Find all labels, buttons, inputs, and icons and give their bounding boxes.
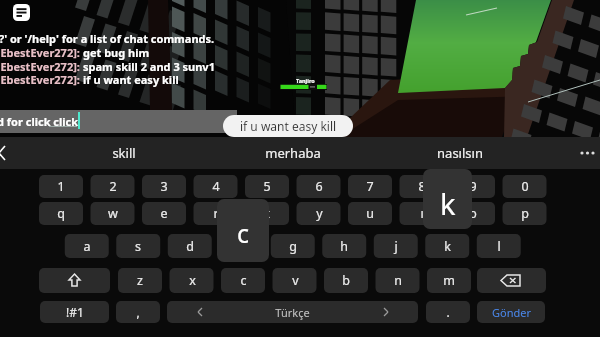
staticText: v <box>292 272 299 289</box>
button[interactable]: c <box>221 268 265 293</box>
staticText: merhaba <box>265 144 321 162</box>
button[interactable]: nasılsın <box>400 137 520 169</box>
staticText: m <box>443 272 455 289</box>
button[interactable]: 2 <box>91 175 135 198</box>
staticText: if u want easy kill <box>83 72 179 87</box>
staticText: Gönder <box>492 305 531 320</box>
staticText: if u want easy kill <box>240 118 337 134</box>
staticText: w <box>108 205 118 222</box>
button[interactable]: w <box>91 202 135 225</box>
button[interactable]: x <box>170 268 214 293</box>
staticText: ı <box>420 205 424 222</box>
button[interactable]: Türkçe <box>167 301 418 323</box>
staticText: spam skill 2 and 3 sunv1 <box>83 59 215 74</box>
button[interactable]: 5 <box>245 175 289 198</box>
staticText: q <box>57 205 65 222</box>
button[interactable]: g <box>271 234 315 258</box>
button[interactable]: 8 <box>400 175 444 198</box>
staticText: . <box>446 304 450 320</box>
staticText: c <box>240 272 247 289</box>
staticText: k <box>440 184 456 223</box>
button[interactable]: m <box>427 268 471 293</box>
button[interactable]: k <box>423 169 472 229</box>
button[interactable]: s <box>116 234 160 258</box>
staticText: b <box>342 272 350 289</box>
staticText: 3 <box>160 178 168 195</box>
button[interactable]: 7 <box>348 175 392 198</box>
button[interactable]: !#1 <box>40 301 109 323</box>
staticText: 7 <box>366 178 374 195</box>
button[interactable]: q <box>39 202 83 225</box>
button[interactable]: , <box>116 301 160 323</box>
staticText: d <box>186 238 194 255</box>
button[interactable]: l <box>477 234 521 258</box>
staticText: 0 <box>521 178 529 195</box>
staticText: a <box>83 238 91 255</box>
button[interactable]: skill <box>64 137 184 169</box>
staticText: skill <box>112 144 136 162</box>
staticText: Türkçe <box>275 305 310 320</box>
button[interactable]: r <box>194 202 238 225</box>
button[interactable]: u <box>348 202 392 225</box>
button[interactable]: Shift <box>39 268 110 293</box>
staticText: r <box>213 205 219 222</box>
button[interactable]: d <box>168 234 212 258</box>
button[interactable]: Gönder <box>477 301 545 323</box>
button[interactable]: 3 <box>142 175 186 198</box>
button[interactable]: 1 <box>39 175 83 198</box>
button[interactable]: t <box>245 202 289 225</box>
button[interactable]: 4 <box>194 175 238 198</box>
staticText: u <box>366 205 374 222</box>
staticText: 4 <box>212 178 220 195</box>
staticText: y <box>316 205 323 222</box>
staticText: x <box>189 272 196 289</box>
staticText: n <box>394 272 402 289</box>
button[interactable]: h <box>322 234 366 258</box>
staticText: nasılsın <box>437 144 483 162</box>
staticText: l <box>497 238 501 255</box>
staticText: [THEbestEver272]: <box>0 45 83 60</box>
staticText: h <box>340 238 348 255</box>
button[interactable]: 6 <box>297 175 341 198</box>
button[interactable]: More suggestions <box>570 137 600 169</box>
button[interactable]: v <box>273 268 317 293</box>
button[interactable]: p <box>503 202 547 225</box>
staticText: e <box>160 205 168 222</box>
staticText: p <box>521 205 529 222</box>
button[interactable]: f <box>219 234 263 258</box>
staticText: s <box>135 238 141 255</box>
button[interactable]: e <box>142 202 186 225</box>
staticText: 6 <box>315 178 323 195</box>
button[interactable]: 9 <box>451 175 495 198</box>
button[interactable]: 0 <box>503 175 547 198</box>
staticText: Tanjiro <box>296 77 315 84</box>
button[interactable]: . <box>426 301 470 323</box>
button[interactable]: if u want easy kill <box>223 115 353 137</box>
staticText: [THEbestEver272]: <box>0 72 83 87</box>
button[interactable]: ı <box>400 202 444 225</box>
staticText: !#1 <box>66 304 84 320</box>
button[interactable] <box>0 110 237 133</box>
button[interactable]: Chat <box>13 4 30 21</box>
staticText: k <box>444 238 451 255</box>
button[interactable]: c <box>217 199 269 262</box>
button[interactable]: merhaba <box>233 137 353 169</box>
staticText: 8 <box>418 178 426 195</box>
staticText: z <box>137 272 143 289</box>
button[interactable]: z <box>118 268 162 293</box>
staticText: o <box>469 205 477 222</box>
button[interactable]: j <box>374 234 418 258</box>
staticText: g <box>289 238 297 255</box>
button[interactable]: a <box>65 234 109 258</box>
staticText: 9 <box>469 178 477 195</box>
staticText: get bug him <box>83 45 150 60</box>
staticText: 2 <box>109 178 117 195</box>
staticText: '?' or '/help' for a list of chat comman… <box>0 31 215 46</box>
staticText: 5 <box>263 178 271 195</box>
button[interactable]: y <box>297 202 341 225</box>
button[interactable]: k <box>425 234 469 258</box>
button[interactable]: o <box>451 202 495 225</box>
button[interactable]: b <box>324 268 368 293</box>
button[interactable]: n <box>376 268 420 293</box>
button[interactable]: Backspace <box>477 268 546 293</box>
